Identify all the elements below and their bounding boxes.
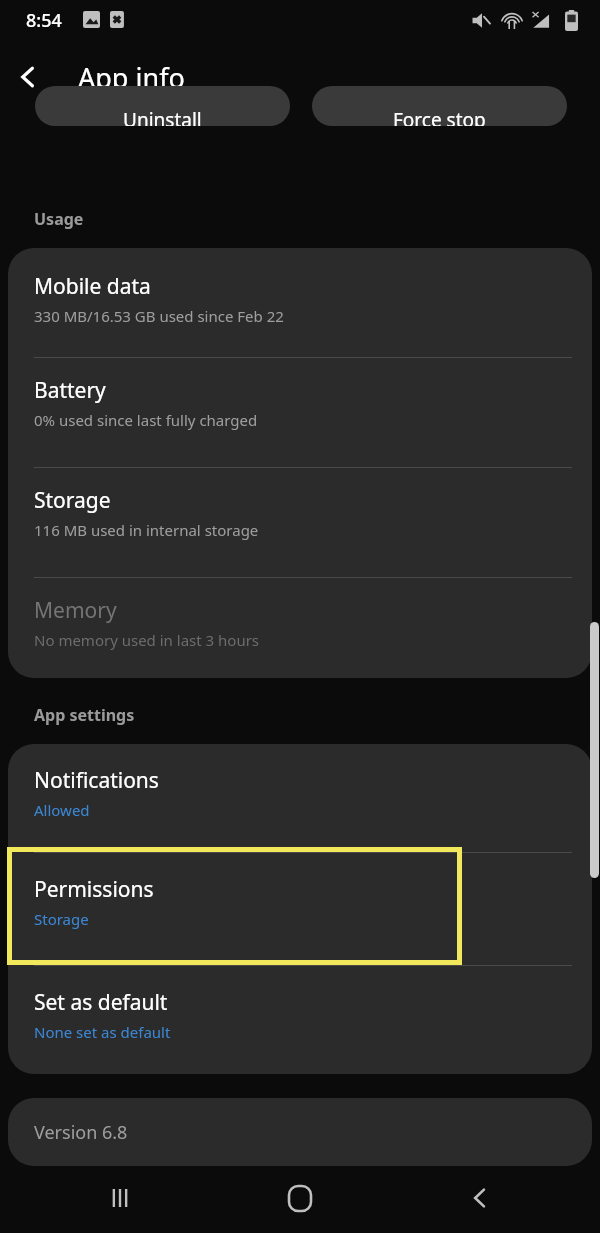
- staticText: Notifications: [34, 766, 159, 795]
- staticText: Permissions: [34, 875, 154, 904]
- button[interactable]: Force stop: [312, 86, 567, 126]
- staticText: Force stop: [393, 107, 486, 126]
- button[interactable]: Notifications: [8, 744, 592, 852]
- staticText: Storage: [34, 909, 89, 929]
- button[interactable]: Version 6.8: [8, 1098, 592, 1166]
- staticText: 0% used since last fully charged: [34, 410, 258, 430]
- staticText: Uninstall: [123, 107, 202, 126]
- staticText: Allowed: [34, 800, 90, 820]
- staticText: App settings: [34, 704, 135, 726]
- staticText: None set as default: [34, 1022, 171, 1042]
- button[interactable]: Uninstall: [35, 86, 290, 126]
- staticText: Storage: [34, 486, 111, 515]
- button[interactable]: Mobile data: [8, 248, 592, 357]
- staticText: Usage: [34, 208, 84, 230]
- staticText: No memory used in last 3 hours: [34, 630, 260, 650]
- button[interactable]: Back: [0, 49, 56, 105]
- staticText: Set as default: [34, 988, 168, 1017]
- button[interactable]: Recents: [90, 1168, 150, 1228]
- staticText: Memory: [34, 596, 117, 625]
- staticText: Version 6.8: [34, 1120, 128, 1145]
- staticText: 330 MB/16.53 GB used since Feb 22: [34, 306, 284, 326]
- staticText: 116 MB used in internal storage: [34, 520, 259, 540]
- button[interactable]: Battery: [8, 358, 592, 467]
- button[interactable]: Permissions: [8, 853, 592, 965]
- button[interactable]: Memory: [8, 578, 592, 678]
- button[interactable]: Storage: [8, 468, 592, 577]
- button[interactable]: Set as default: [8, 966, 592, 1074]
- staticText: Mobile data: [34, 272, 151, 301]
- staticText: Battery: [34, 376, 106, 405]
- button[interactable]: Back: [450, 1168, 510, 1228]
- staticText: 8:54: [26, 8, 62, 33]
- button[interactable]: Home: [270, 1168, 330, 1228]
- staticText: App info: [78, 59, 185, 96]
